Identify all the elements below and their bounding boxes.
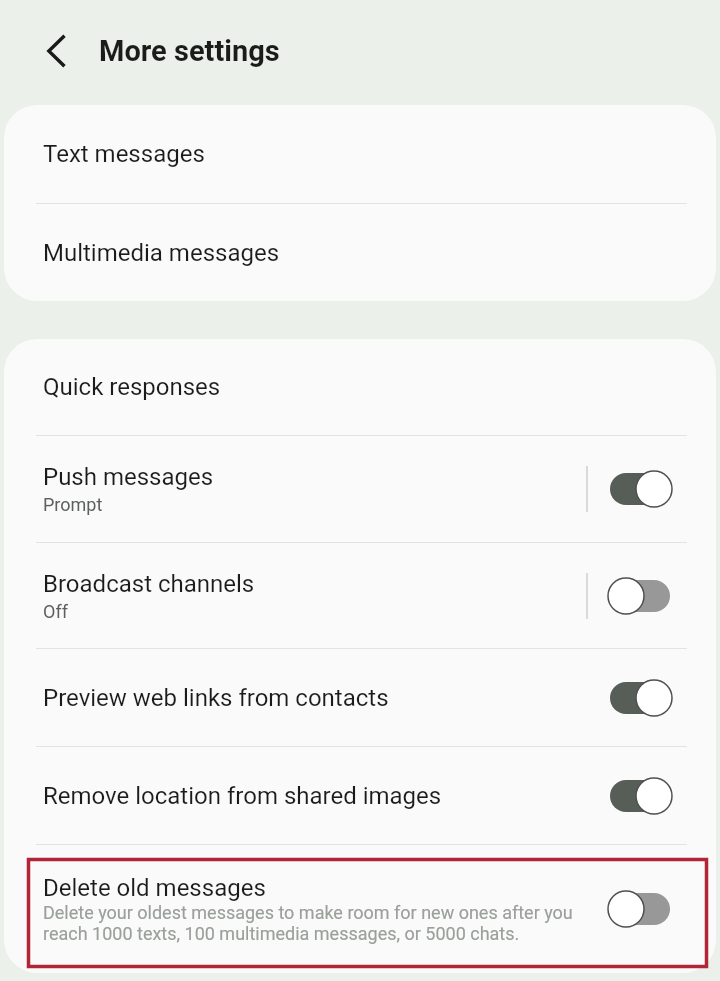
staticText: Broadcast channels xyxy=(43,570,255,598)
button[interactable]: Back xyxy=(31,27,83,79)
staticText: Push messages xyxy=(43,463,214,491)
staticText: Text messages xyxy=(43,140,205,168)
staticText: Prompt xyxy=(43,494,103,515)
staticText: More settings xyxy=(99,34,280,68)
button[interactable]: Toggle on xyxy=(600,768,680,824)
button[interactable]: Toggle off xyxy=(600,881,680,937)
staticText: Delete your oldest messages to make room… xyxy=(43,902,592,945)
button[interactable]: Toggle off xyxy=(600,568,680,624)
button[interactable]: Remove location from shared images xyxy=(4,747,716,844)
staticText: Delete old messages xyxy=(43,874,266,902)
button[interactable]: Broadcast channels xyxy=(4,543,716,648)
button[interactable]: Multimedia messages xyxy=(4,204,716,301)
button[interactable]: Toggle on xyxy=(600,461,680,517)
staticText: Preview web links from contacts xyxy=(43,684,594,712)
staticText: Multimedia messages xyxy=(43,239,280,267)
staticText: Quick responses xyxy=(43,373,221,401)
staticText: Off xyxy=(43,601,68,622)
button[interactable]: Push messages xyxy=(4,436,716,542)
button[interactable]: Text messages xyxy=(4,105,716,203)
button[interactable]: Toggle on xyxy=(600,670,680,726)
button[interactable]: Quick responses xyxy=(4,339,716,435)
button[interactable]: Delete old messages xyxy=(4,845,716,973)
button[interactable]: Preview web links from contacts xyxy=(4,649,716,746)
staticText: Remove location from shared images xyxy=(43,782,594,810)
